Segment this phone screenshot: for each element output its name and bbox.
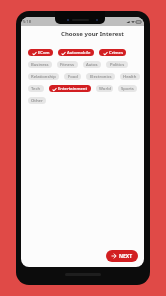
button[interactable]: Electronics [86,73,115,80]
staticText: Fitness [60,62,75,68]
staticText: Tech [31,86,41,92]
staticText: ECom [38,50,50,56]
button[interactable]: Crimes [99,49,126,56]
button[interactable]: Entertainment [49,85,91,92]
button[interactable]: Business [28,61,52,68]
staticText: Crimes [109,50,123,56]
button[interactable]: Other [28,97,46,104]
staticText: 5:18 [23,19,31,24]
staticText: Electronics [90,74,112,80]
button[interactable]: Sports [118,85,137,92]
staticText: Business [31,62,49,68]
button[interactable]: Tech [28,85,44,92]
button[interactable]: ECom [28,49,53,56]
button[interactable]: Food [64,73,81,80]
staticText: Health [123,74,137,80]
button[interactable]: World [96,85,113,92]
staticText: Relationship [31,74,56,80]
staticText: Choose your Interest [61,30,124,38]
staticText: Sports [121,86,134,92]
button[interactable]: NEXT [106,250,138,262]
button[interactable]: Automobile [58,49,94,56]
staticText: Autos [86,62,98,68]
staticText: Entertainment [58,86,88,92]
staticText: Other [31,98,43,104]
staticText: Automobile [67,50,91,56]
button[interactable]: Relationship [28,73,59,80]
button[interactable]: Politics [106,61,128,68]
staticText: World [99,86,111,92]
button[interactable]: Health [120,73,140,80]
staticText: NEXT [119,253,133,260]
staticText: Politics [110,62,125,68]
staticText: Food [68,74,78,80]
button[interactable]: Fitness [57,61,78,68]
button[interactable]: Autos [83,61,101,68]
